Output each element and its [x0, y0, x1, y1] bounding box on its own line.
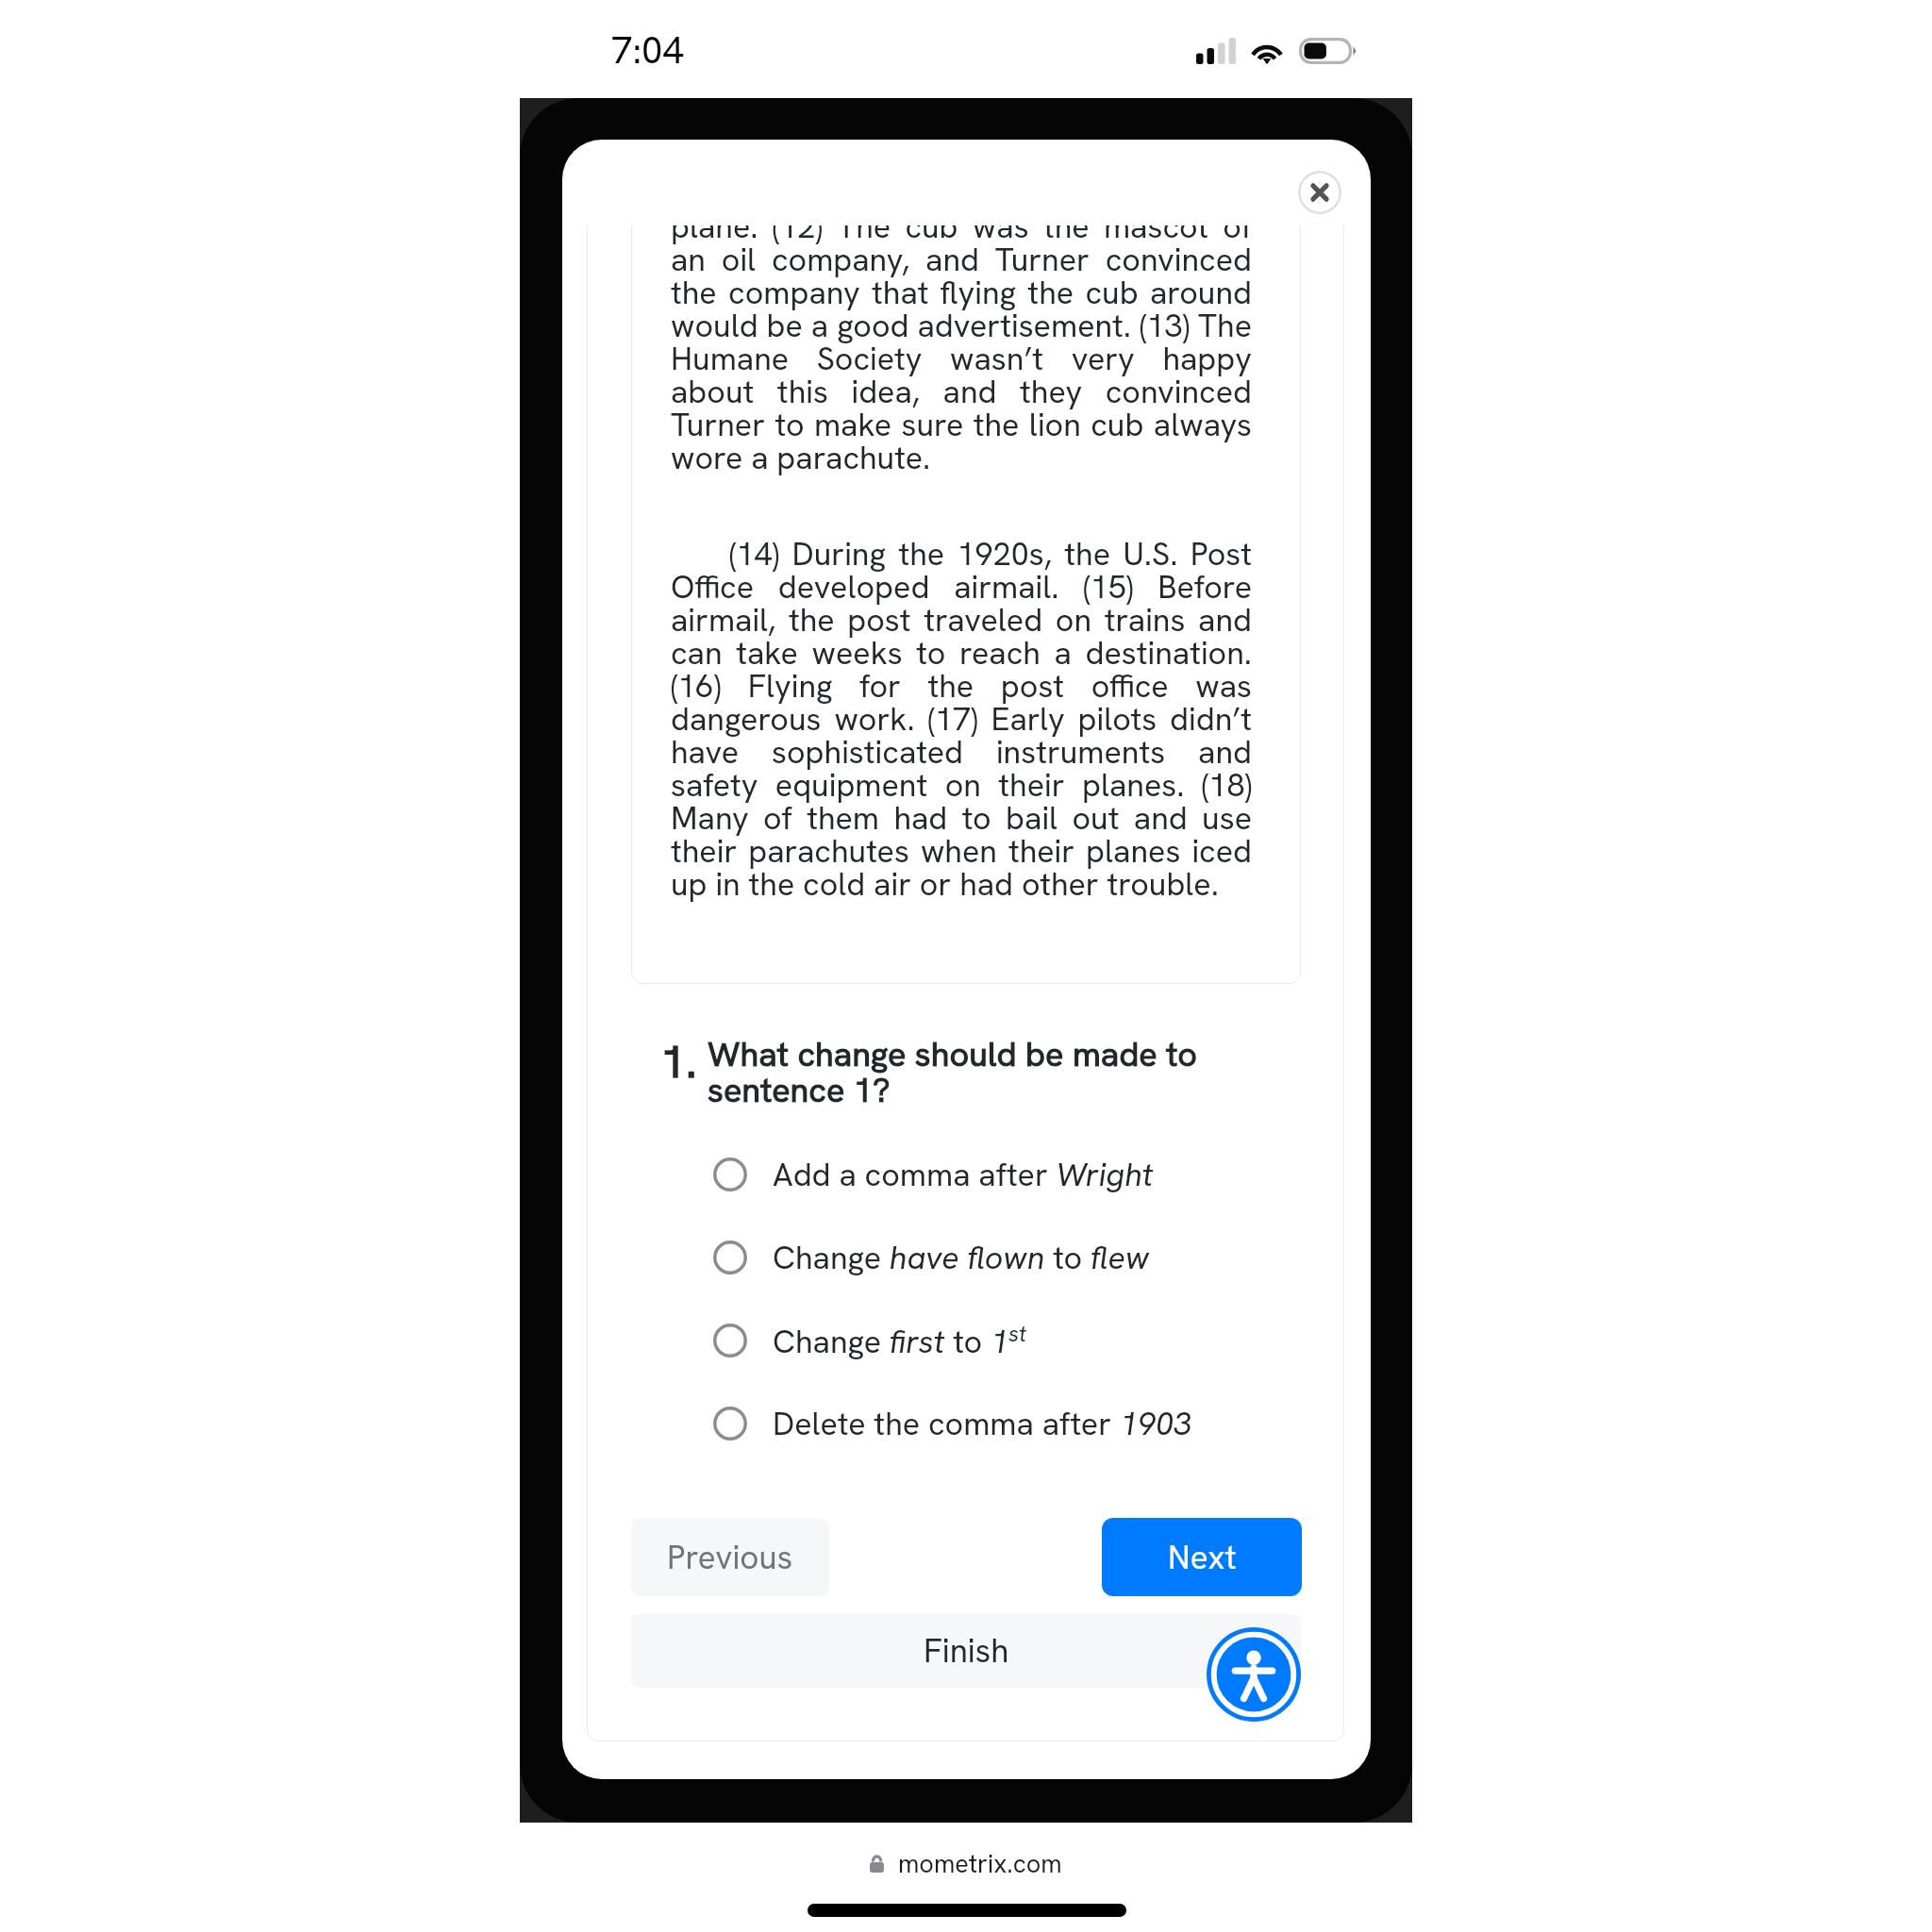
button[interactable]: Add a comma after Wright	[713, 1148, 1241, 1201]
button[interactable]: Previous	[631, 1518, 829, 1596]
button[interactable]: Finish	[631, 1614, 1301, 1688]
button[interactable]: Change first to 1st	[713, 1314, 1241, 1367]
staticText: Change have flown to flew	[773, 1237, 1150, 1278]
staticText: mometrix.com	[898, 1847, 1062, 1880]
staticText: Next	[1168, 1536, 1237, 1579]
staticText: 7:04	[611, 25, 684, 75]
staticText: Change first to 1st	[773, 1320, 1026, 1362]
button[interactable]: Delete the comma after 1903	[713, 1397, 1241, 1450]
staticText: Add a comma after Wright	[773, 1154, 1154, 1195]
button[interactable]: Accessibility	[1207, 1627, 1301, 1722]
staticText: Finish	[924, 1629, 1009, 1673]
staticText: Previous	[667, 1536, 793, 1579]
staticText: Delete the comma after 1903	[773, 1403, 1192, 1444]
staticText: What change should be made to sentence 1…	[708, 1032, 1203, 1112]
button[interactable]: Close	[1298, 171, 1341, 214]
staticText: 1.	[660, 1032, 697, 1091]
button[interactable]: Change have flown to flew	[713, 1231, 1241, 1284]
staticText: (14) During the 1920s, the U.S. Post Off…	[671, 533, 1252, 906]
button[interactable]: Next	[1102, 1518, 1302, 1596]
staticText: plane. (12) The cub was the mascot of an…	[671, 225, 1252, 479]
